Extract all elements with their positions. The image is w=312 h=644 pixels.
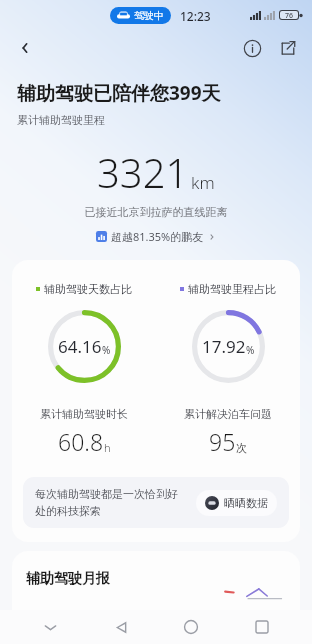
staticText: 超越81.35%的鹏友 bbox=[111, 229, 204, 244]
button[interactable]: Back bbox=[8, 31, 42, 65]
staticText: 辅助驾驶已陪伴您399天 bbox=[17, 80, 221, 106]
staticText: 95 bbox=[209, 426, 236, 457]
button[interactable]: Info bbox=[236, 32, 268, 64]
staticText: % bbox=[102, 343, 111, 357]
staticText: 已接近北京到拉萨的直线距离 bbox=[0, 205, 312, 219]
button[interactable]: 超越81.35%的鹏友 bbox=[92, 227, 220, 246]
staticText: 3321 bbox=[97, 145, 189, 199]
button[interactable]: Hide keyboard bbox=[30, 610, 70, 644]
staticText: km bbox=[191, 171, 215, 194]
button[interactable]: 晒晒数据 bbox=[196, 490, 277, 516]
staticText: 12:23 bbox=[180, 8, 211, 24]
staticText: 累计解决泊车问题 bbox=[184, 407, 272, 421]
staticText: 17.92 bbox=[202, 335, 246, 358]
staticText: 晒晒数据 bbox=[224, 496, 268, 510]
button[interactable]: 辅助驾驶月报 bbox=[12, 551, 300, 631]
button[interactable]: Share bbox=[272, 32, 304, 64]
staticText: % bbox=[246, 343, 255, 357]
staticText: 驾驶中 bbox=[134, 9, 164, 22]
button[interactable]: 驾驶中 bbox=[117, 9, 164, 22]
button[interactable]: Home bbox=[171, 610, 211, 644]
staticText: 64.16 bbox=[58, 335, 102, 358]
staticText: 辅助驾驶里程占比 bbox=[188, 282, 276, 296]
staticText: 次 bbox=[236, 441, 247, 455]
button[interactable]: Back bbox=[101, 610, 141, 644]
staticText: 累计辅助驾驶时长 bbox=[40, 407, 128, 421]
staticText: 累计辅助驾驶里程 bbox=[17, 113, 105, 127]
staticText: h bbox=[104, 440, 111, 455]
staticText: 每次辅助驾驶都是一次恰到好 处的科技探索 bbox=[35, 487, 188, 518]
staticText: 60.8 bbox=[58, 426, 104, 457]
button[interactable]: Recents bbox=[242, 610, 282, 644]
staticText: 辅助驾驶月报 bbox=[26, 570, 110, 588]
staticText: 辅助驾驶天数占比 bbox=[44, 282, 132, 296]
staticText: 76 bbox=[285, 11, 294, 19]
